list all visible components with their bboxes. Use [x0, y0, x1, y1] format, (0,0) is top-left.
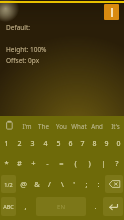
- button[interactable]: 2: [13, 135, 26, 152]
- button[interactable]: The: [35, 116, 52, 135]
- staticText: 6: [68, 139, 73, 149]
- staticText: EN: [57, 203, 65, 211]
- button[interactable]: ): [82, 152, 96, 173]
- button[interactable]: |: [96, 152, 110, 173]
- staticText: What: [71, 122, 87, 130]
- staticText: 1: [4, 139, 9, 149]
- button[interactable]: &: [30, 173, 43, 194]
- staticText: +: [31, 158, 36, 168]
- staticText: ;: [85, 179, 88, 189]
- staticText: 0: [116, 139, 121, 149]
- button[interactable]: What: [70, 116, 88, 135]
- staticText: &: [34, 179, 40, 189]
- button[interactable]: ': [68, 173, 80, 194]
- staticText: =: [59, 158, 64, 168]
- button[interactable]: 1/2: [1, 175, 16, 193]
- button[interactable]: 5: [52, 135, 64, 152]
- staticText: /: [48, 179, 51, 189]
- staticText: .: [94, 201, 97, 211]
- staticText: 8: [92, 139, 97, 149]
- staticText: And: [91, 122, 103, 130]
- staticText: Height: 100%: [6, 45, 47, 54]
- staticText: ABC: [3, 203, 14, 210]
- staticText: ,: [24, 201, 27, 211]
- button[interactable]: ABC: [1, 197, 16, 216]
- staticText: :: [97, 179, 100, 189]
- button[interactable]: You: [52, 116, 70, 135]
- staticText: 1/2: [4, 181, 13, 188]
- button[interactable]: +: [26, 152, 40, 173]
- button[interactable]: Backspace: [105, 175, 123, 193]
- button[interactable]: EN: [36, 197, 86, 216]
- staticText: |: [101, 158, 106, 168]
- button[interactable]: 0: [112, 135, 124, 152]
- staticText: \: [61, 179, 64, 189]
- staticText: It's: [111, 122, 120, 130]
- staticText: 4: [43, 139, 48, 149]
- button[interactable]: =: [54, 152, 68, 173]
- staticText: 3: [30, 139, 35, 149]
- button[interactable]: \: [56, 173, 68, 194]
- button[interactable]: (: [68, 152, 82, 173]
- staticText: Default:: [6, 23, 31, 32]
- staticText: 7: [80, 139, 85, 149]
- button[interactable]: 4: [39, 135, 52, 152]
- staticText: (: [74, 158, 77, 168]
- button[interactable]: Enter: [103, 197, 123, 216]
- staticText: 9: [104, 139, 109, 149]
- button[interactable]: .: [88, 194, 102, 218]
- button[interactable]: ?: [110, 152, 124, 173]
- staticText: @: [20, 179, 27, 189]
- staticText: The: [38, 122, 49, 130]
- button[interactable]: @: [17, 173, 30, 194]
- staticText: ': [73, 179, 75, 189]
- staticText: #: [17, 158, 22, 168]
- staticText: You: [56, 122, 67, 130]
- button[interactable]: ,: [17, 194, 34, 218]
- button[interactable]: 3: [26, 135, 39, 152]
- staticText: *: [4, 158, 9, 168]
- staticText: Offset: 0px: [6, 56, 40, 65]
- staticText: 2: [17, 139, 22, 149]
- staticText: ?: [115, 158, 119, 168]
- button[interactable]: 7: [76, 135, 88, 152]
- button[interactable]: 1: [0, 135, 13, 152]
- button[interactable]: Clipboard: [0, 116, 18, 135]
- button[interactable]: ;: [80, 173, 92, 194]
- button[interactable]: 8: [88, 135, 100, 152]
- button[interactable]: *: [0, 152, 13, 173]
- staticText: 5: [56, 139, 61, 149]
- button[interactable]: Text cursor: [104, 4, 119, 20]
- button[interactable]: -: [40, 152, 54, 173]
- staticText: ): [88, 158, 91, 168]
- button[interactable]: #: [13, 152, 26, 173]
- button[interactable]: :: [92, 173, 104, 194]
- button[interactable]: I'm: [18, 116, 35, 135]
- button[interactable]: 6: [64, 135, 76, 152]
- staticText: -: [46, 158, 49, 168]
- button[interactable]: /: [43, 173, 56, 194]
- button[interactable]: 9: [100, 135, 112, 152]
- button[interactable]: It's: [106, 116, 124, 135]
- button[interactable]: And: [88, 116, 106, 135]
- staticText: I'm: [22, 122, 32, 130]
